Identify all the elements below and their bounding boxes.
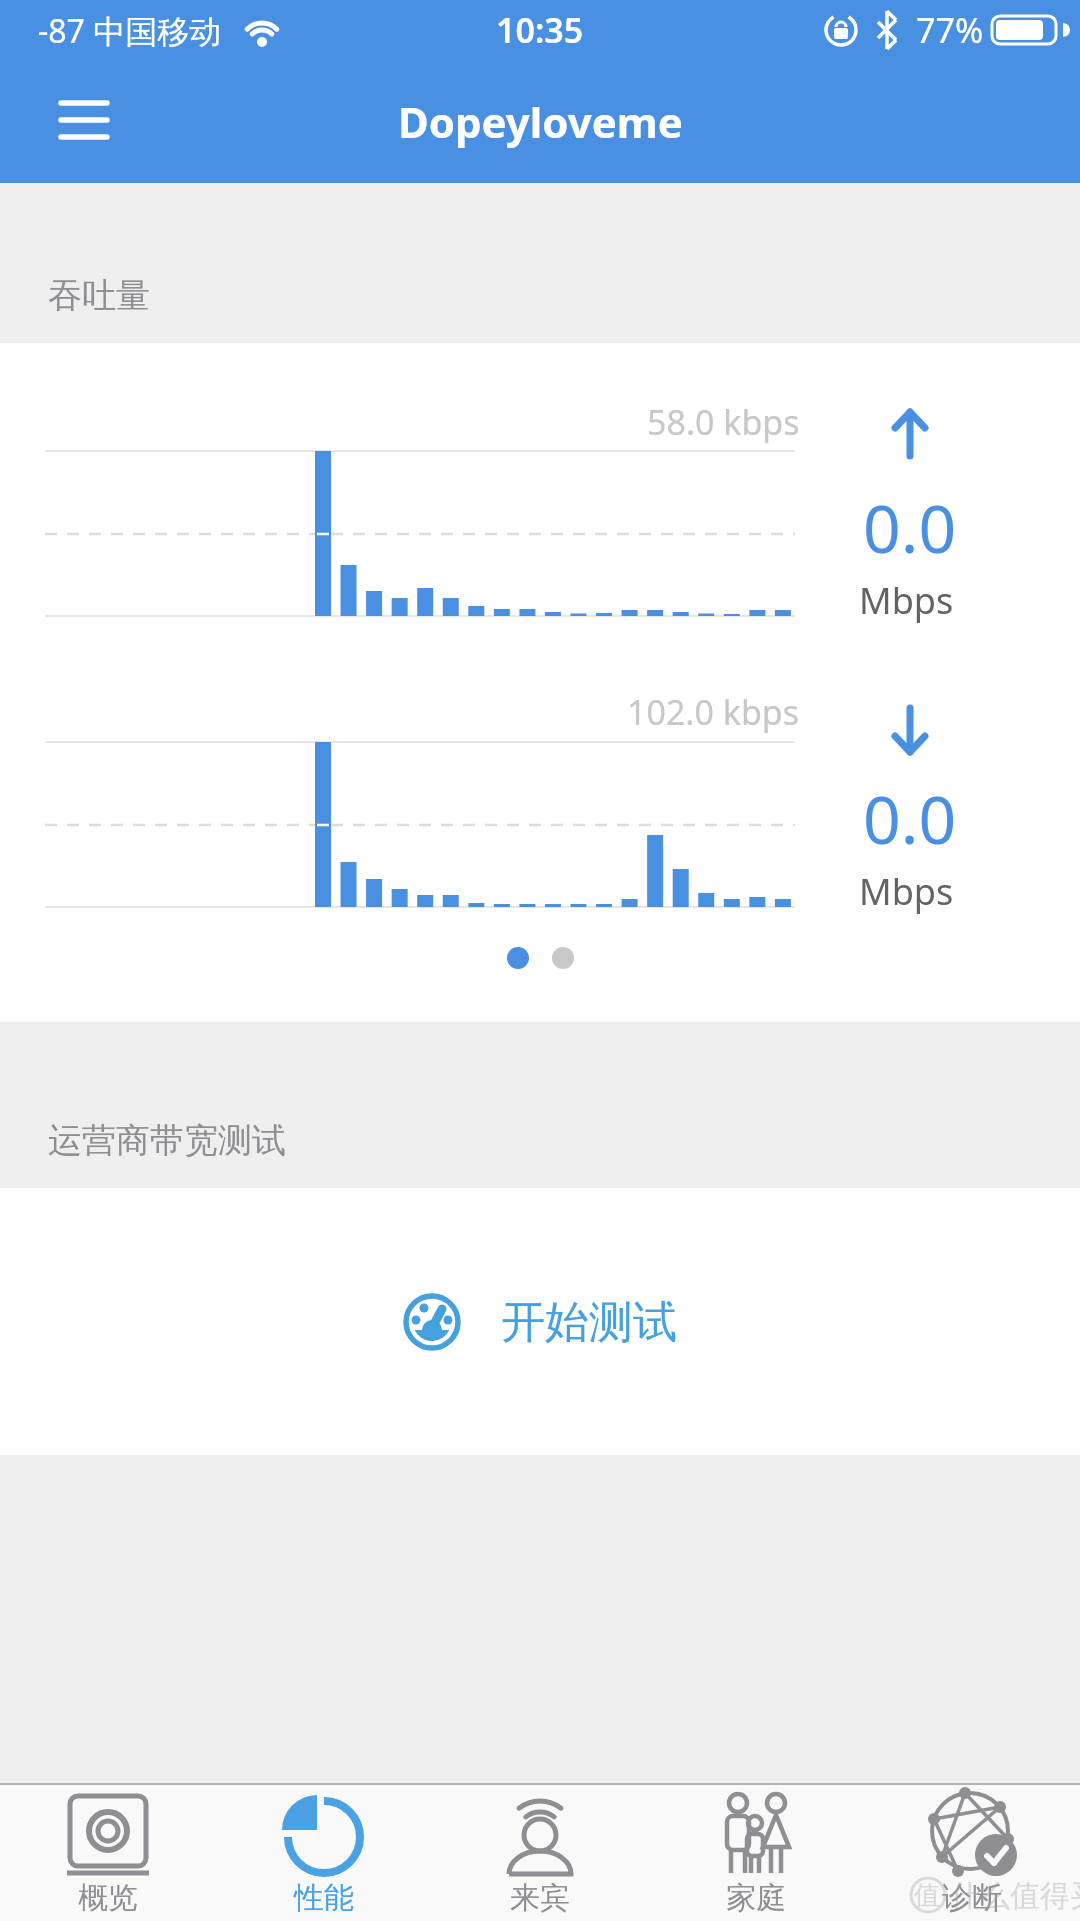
button[interactable]: 性能: [216, 1783, 432, 1921]
button[interactable]: [52, 88, 116, 152]
staticText: 来宾: [510, 1879, 570, 1917]
staticText: 58.0 kbps: [647, 399, 800, 445]
button[interactable]: 家庭: [648, 1783, 864, 1921]
button[interactable]: 来宾: [432, 1783, 648, 1921]
staticText: 0.0: [863, 773, 957, 863]
staticText: 102.0 kbps: [627, 689, 800, 735]
staticText: 运营商带宽测试: [48, 1119, 286, 1162]
staticText: 诊断: [942, 1879, 1002, 1917]
staticText: 家庭: [726, 1879, 786, 1917]
staticText: Mbps: [859, 576, 954, 625]
button[interactable]: 诊断: [864, 1783, 1080, 1921]
staticText: 性能: [294, 1879, 354, 1917]
staticText: -87 中国移动: [38, 9, 222, 53]
button[interactable]: 开始测试: [403, 1293, 677, 1351]
staticText: Mbps: [859, 867, 954, 916]
staticText: 77%: [916, 7, 984, 53]
staticText: 什么值得买: [950, 1877, 1080, 1915]
staticText: Dopeyloveme: [398, 93, 683, 150]
staticText: 吞吐量: [48, 274, 150, 317]
staticText: 概览: [78, 1879, 138, 1917]
staticText: 10:35: [496, 7, 584, 53]
staticText: 0.0: [863, 482, 957, 572]
staticText: 开始测试: [501, 1295, 677, 1350]
button[interactable]: 概览: [0, 1783, 216, 1921]
staticText: 值: [914, 1879, 940, 1912]
